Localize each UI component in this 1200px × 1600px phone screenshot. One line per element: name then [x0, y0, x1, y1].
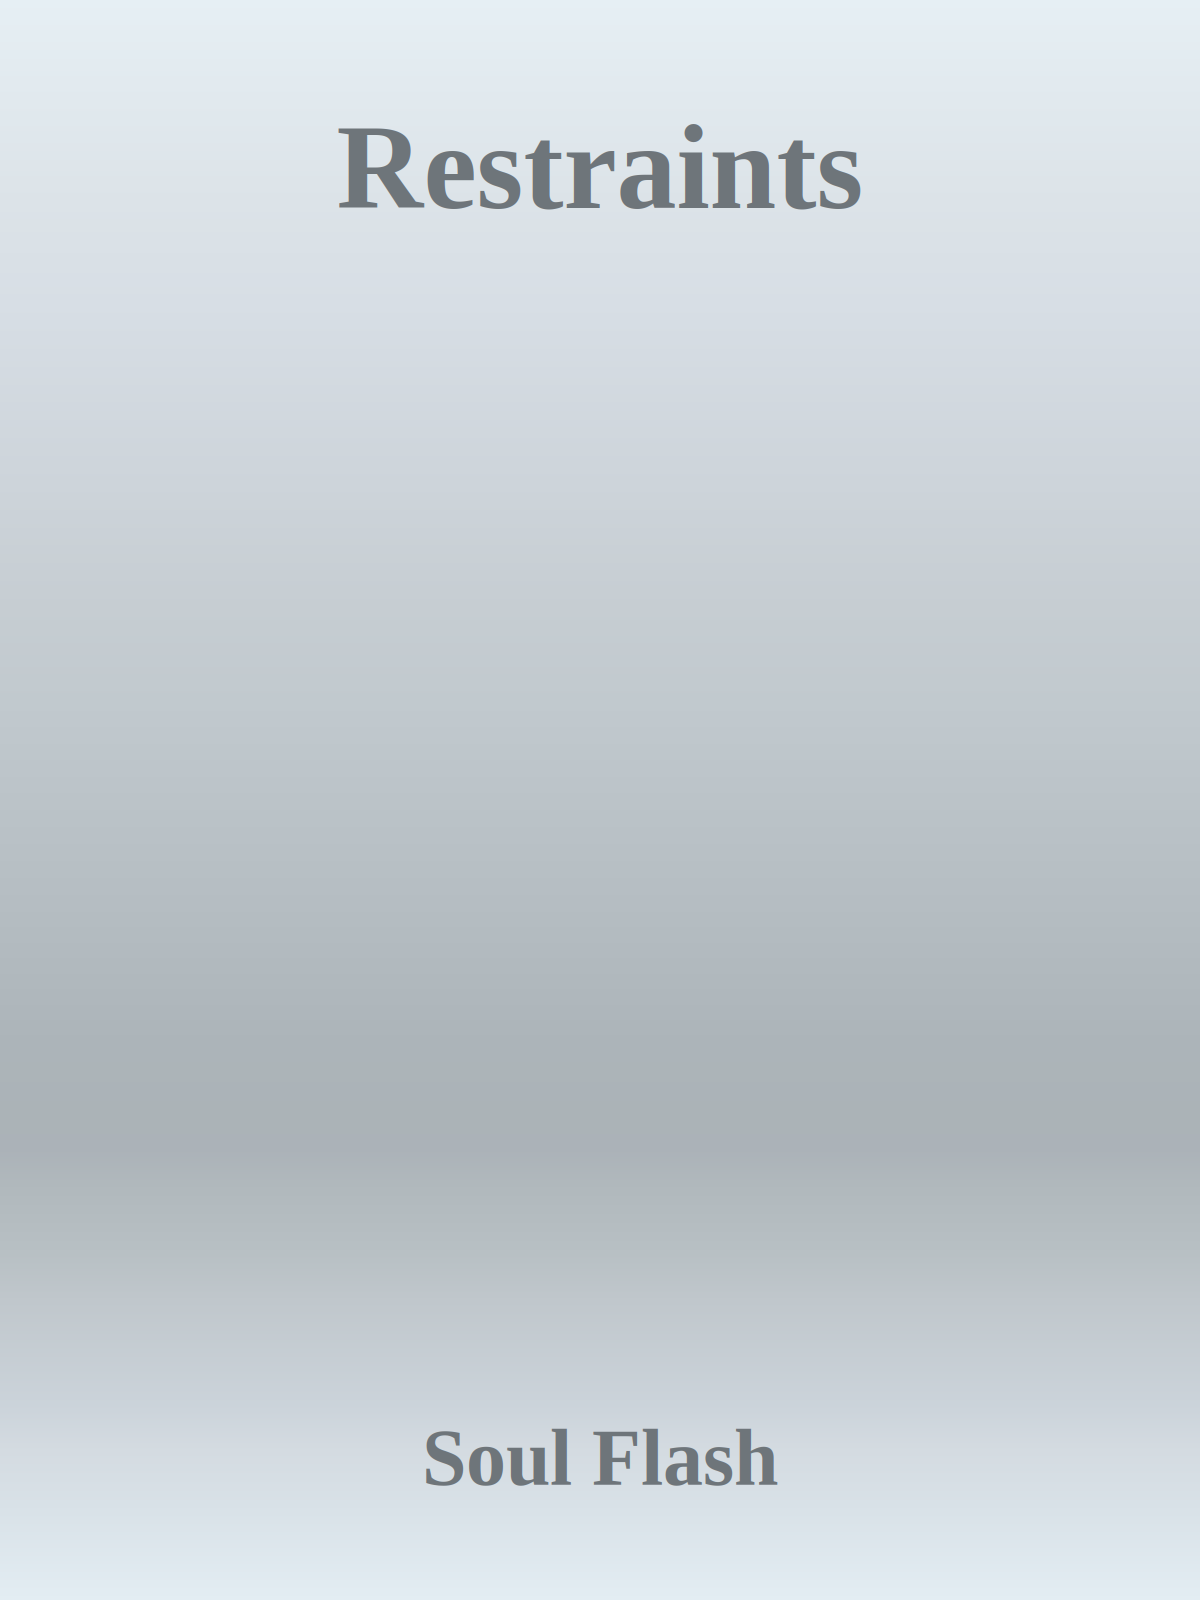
- staticText: Restraints: [336, 101, 863, 234]
- staticText: Soul Flash: [422, 1413, 778, 1502]
